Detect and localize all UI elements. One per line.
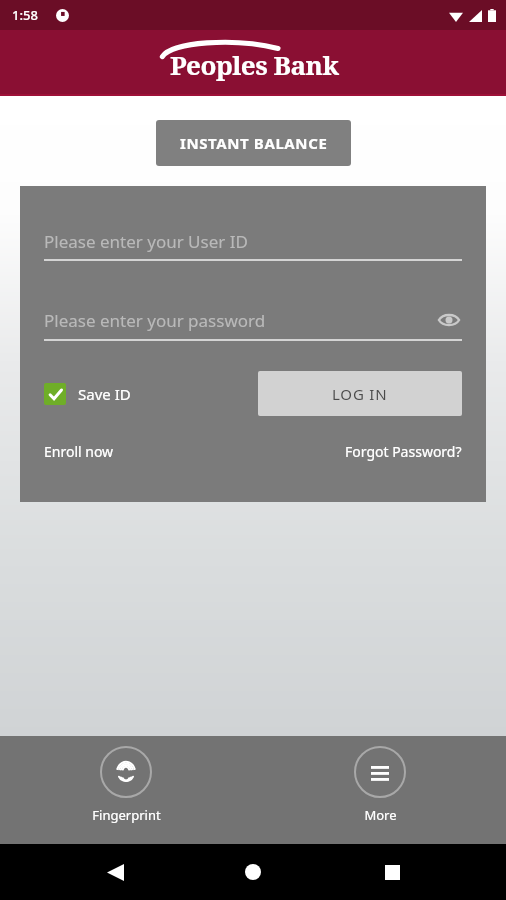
- button[interactable]: Enroll now: [44, 438, 114, 465]
- staticText: Please enter your password: [44, 309, 266, 332]
- staticText: Fingerprint: [92, 806, 161, 824]
- button[interactable]: More options: [332, 746, 428, 824]
- staticText: Save ID: [78, 384, 131, 404]
- button[interactable]: Fingerprint login: [78, 746, 174, 824]
- button[interactable]: Back: [91, 848, 139, 896]
- staticText: 1:58: [12, 6, 38, 24]
- button[interactable]: Home: [229, 848, 277, 896]
- button[interactable]: Forgot Password?: [345, 438, 462, 465]
- button[interactable]: Save ID: [44, 383, 131, 405]
- button[interactable]: Show password: [436, 307, 462, 333]
- button[interactable]: Recent apps: [368, 848, 416, 896]
- staticText: Please enter your User ID: [44, 230, 248, 253]
- staticText: INSTANT BALANCE: [180, 133, 328, 153]
- button[interactable]: INSTANT BALANCE: [156, 120, 351, 166]
- staticText: Peoples Bank: [170, 47, 339, 82]
- button[interactable]: LOG IN: [258, 371, 462, 416]
- button[interactable]: Please enter your User ID: [44, 230, 462, 261]
- staticText: Forgot Password?: [345, 442, 462, 461]
- staticText: Enroll now: [44, 442, 114, 461]
- button[interactable]: Please enter your password: [44, 307, 462, 341]
- staticText: LOG IN: [332, 384, 388, 404]
- staticText: More: [364, 806, 397, 824]
